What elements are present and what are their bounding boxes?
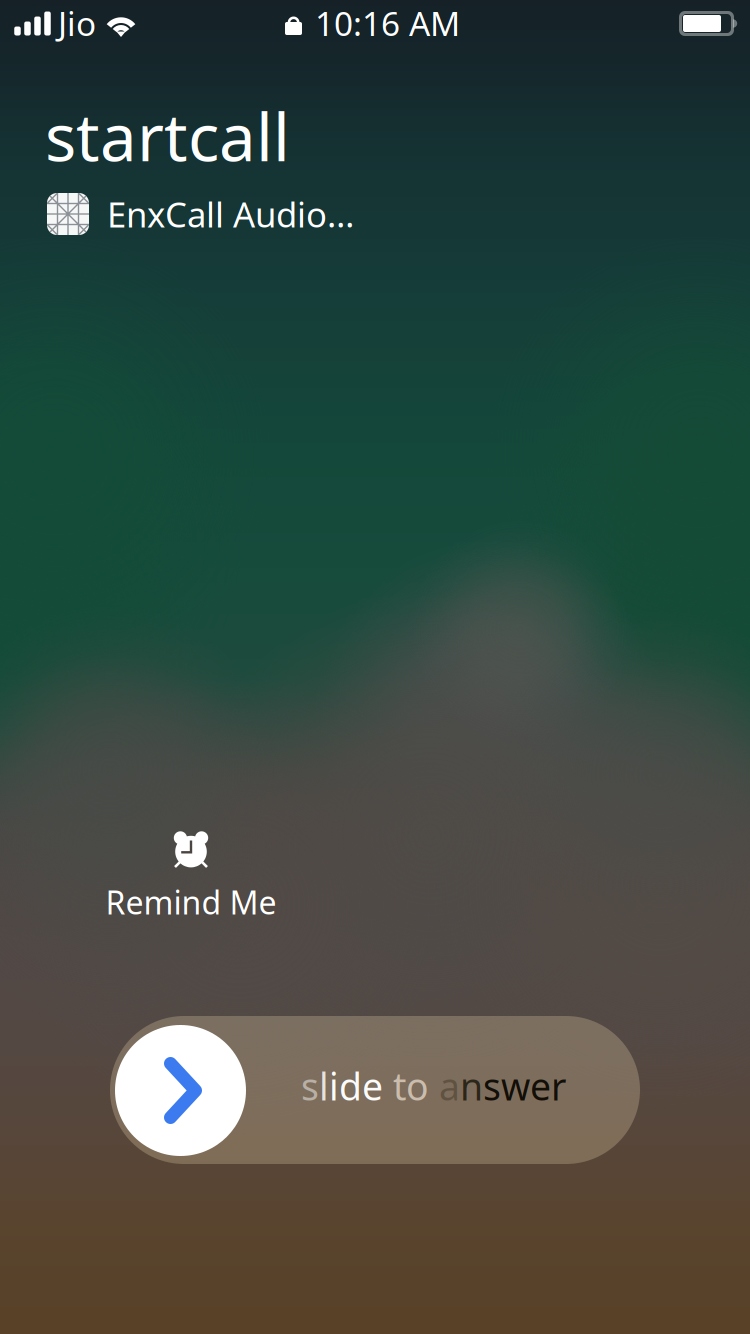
staticText: to bbox=[383, 1061, 429, 1111]
staticText: swer bbox=[483, 1061, 566, 1111]
staticText: s bbox=[301, 1061, 319, 1111]
staticText: ide bbox=[329, 1061, 383, 1111]
staticText: 10:16 AM bbox=[315, 1, 460, 45]
staticText: l bbox=[319, 1061, 329, 1111]
staticText: Jio bbox=[58, 1, 96, 45]
button[interactable]: Remind Me bbox=[41, 830, 341, 930]
staticText: n bbox=[460, 1061, 483, 1111]
staticText: startcall bbox=[45, 93, 290, 179]
staticText: Remind Me bbox=[105, 881, 276, 923]
staticText: EnxCall Audio… bbox=[107, 191, 354, 237]
button[interactable]: s bbox=[110, 1016, 640, 1164]
staticText: a bbox=[439, 1061, 460, 1111]
